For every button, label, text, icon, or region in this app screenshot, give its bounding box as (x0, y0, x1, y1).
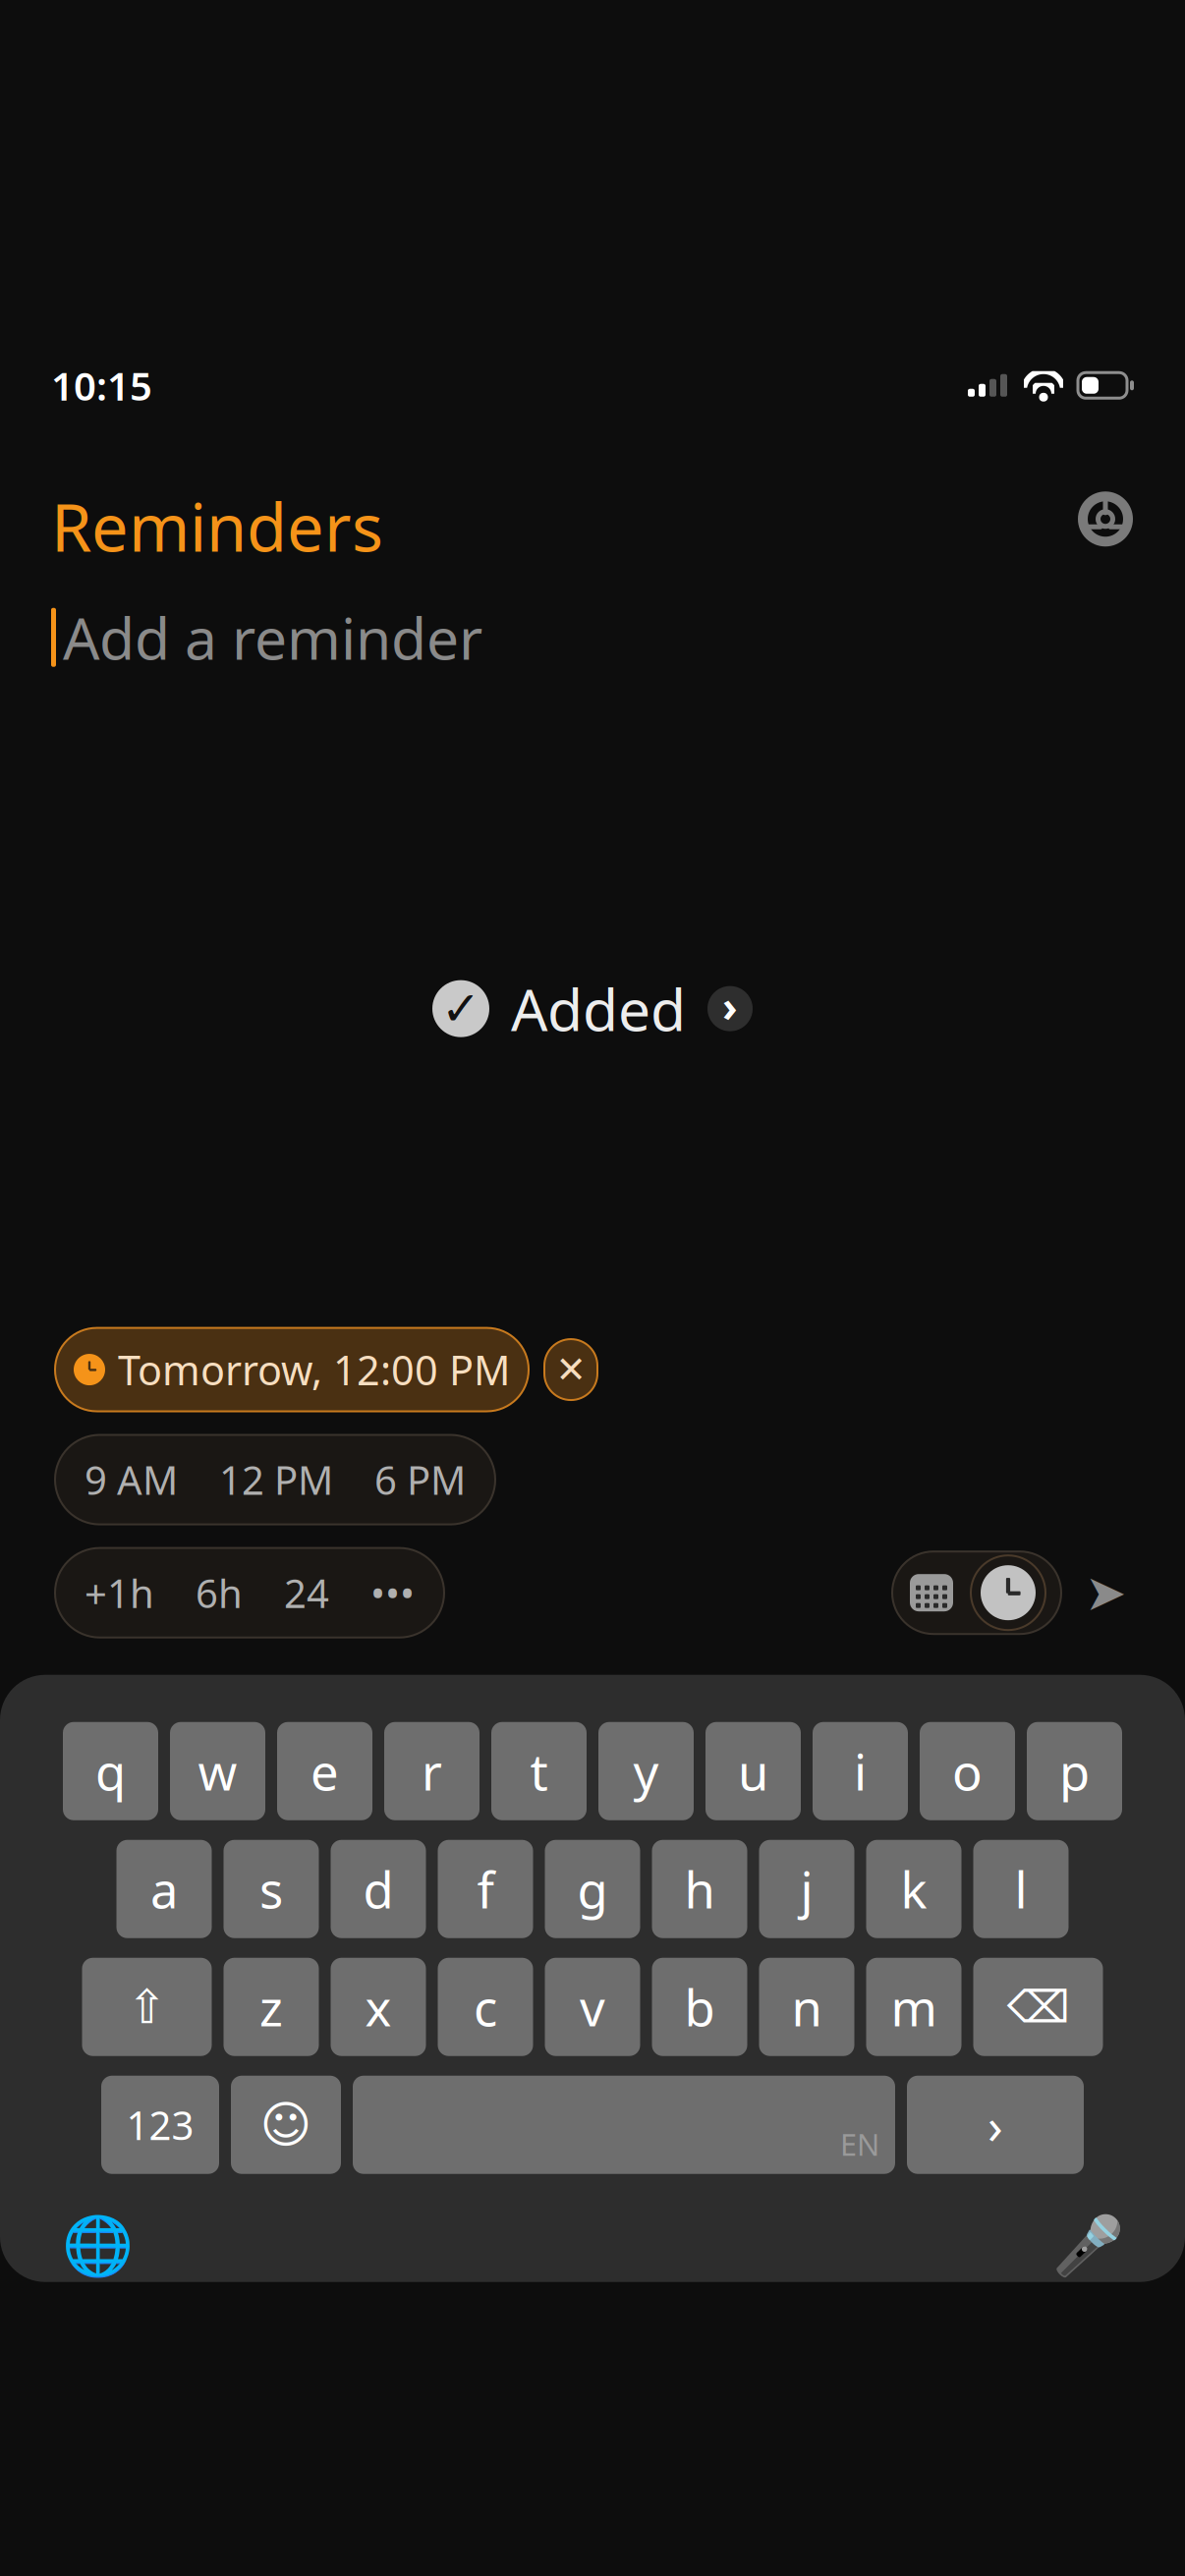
button[interactable]: t (491, 1722, 587, 1820)
button[interactable]: Remove date (544, 1339, 597, 1400)
staticText: d (363, 1856, 394, 1922)
staticText: l (1015, 1856, 1027, 1922)
staticText: z (259, 1974, 283, 2040)
staticText: ☺ (260, 2097, 312, 2153)
staticText: g (577, 1856, 608, 1922)
button[interactable]: k (866, 1840, 961, 1938)
staticText: Reminders (51, 483, 383, 570)
button[interactable]: Pick time (971, 1555, 1045, 1630)
staticText: y (633, 1738, 659, 1804)
staticText: f (477, 1856, 494, 1922)
button[interactable]: 6h (175, 1548, 263, 1637)
button[interactable]: q (63, 1722, 158, 1820)
button[interactable]: n (759, 1958, 854, 2056)
button[interactable]: l (973, 1840, 1069, 1938)
button[interactable]: 123 (101, 2076, 219, 2174)
staticText: ••• (370, 1567, 415, 1619)
staticText: s (259, 1856, 283, 1922)
button[interactable]: Dictate (1051, 2209, 1124, 2282)
staticText: x (365, 1974, 392, 2040)
button[interactable]: 24 (263, 1548, 350, 1637)
staticText: p (1059, 1738, 1090, 1804)
staticText: e (310, 1738, 339, 1804)
staticText: 9 AM (85, 1454, 178, 1506)
button[interactable]: ⇧ (82, 1958, 212, 2056)
button[interactable]: +1h (64, 1548, 175, 1637)
staticText: 6 PM (374, 1454, 466, 1506)
button[interactable]: j (759, 1840, 854, 1938)
staticText: h (684, 1856, 715, 1922)
button[interactable]: Send (1081, 1568, 1130, 1617)
staticText: k (901, 1856, 927, 1922)
button[interactable]: 12 PM (198, 1435, 354, 1524)
button[interactable]: ••• (350, 1548, 435, 1637)
button[interactable]: y (598, 1722, 694, 1820)
button[interactable]: x (331, 1958, 426, 2056)
button[interactable]: Settings (1077, 491, 1134, 548)
staticText: 🌐 (61, 2213, 133, 2279)
button[interactable]: z (224, 1958, 319, 2056)
button[interactable]: w (170, 1722, 265, 1820)
staticText: 12 PM (219, 1454, 333, 1506)
staticText: w (198, 1738, 237, 1804)
staticText: a (150, 1856, 178, 1922)
staticText: ⌫ (1007, 1982, 1070, 2032)
staticText: ⇧ (127, 1980, 167, 2034)
button[interactable]: 6 PM (354, 1435, 486, 1524)
staticText: 6h (196, 1567, 243, 1619)
button[interactable]: p (1027, 1722, 1122, 1820)
staticText: +1h (85, 1567, 154, 1619)
button[interactable]: i (813, 1722, 908, 1820)
staticText: v (580, 1974, 605, 2040)
button[interactable]: s (224, 1840, 319, 1938)
staticText: 🎤 (1052, 2213, 1124, 2279)
staticText: 123 (126, 2099, 194, 2151)
staticText: i (854, 1738, 867, 1804)
staticText: o (952, 1738, 983, 1804)
button[interactable]: m (866, 1958, 961, 2056)
staticText: Added (511, 970, 686, 1047)
button[interactable]: u (705, 1722, 801, 1820)
staticText: m (891, 1974, 937, 2040)
button[interactable]: Tomorrow, 12:00 PM (55, 1328, 529, 1411)
button[interactable]: v (545, 1958, 640, 2056)
staticText: c (474, 1974, 497, 2040)
staticText: b (684, 1974, 715, 2040)
button[interactable]: 9 AM (64, 1435, 198, 1524)
button[interactable]: Switch keyboard language (61, 2209, 134, 2282)
staticText: Add a reminder (63, 599, 482, 676)
staticText: ✓ (441, 982, 480, 1035)
staticText: ✕ (556, 1349, 586, 1390)
staticText: t (530, 1738, 548, 1804)
button[interactable]: a (116, 1840, 212, 1938)
staticText: 24 (284, 1567, 329, 1619)
staticText: › (987, 2092, 1003, 2158)
staticText: EN (840, 2124, 879, 2164)
button[interactable]: o (920, 1722, 1015, 1820)
button[interactable]: › (907, 2076, 1084, 2174)
button[interactable]: ✓ (432, 970, 753, 1047)
staticText: ➤ (1085, 1564, 1126, 1621)
staticText: u (738, 1738, 768, 1804)
staticText: 10:15 (51, 359, 152, 411)
staticText: Tomorrow, 12:00 PM (118, 1343, 510, 1397)
button[interactable]: Space (353, 2076, 895, 2174)
button[interactable]: h (652, 1840, 747, 1938)
staticText: n (791, 1974, 822, 2040)
button[interactable]: d (331, 1840, 426, 1938)
button[interactable]: ⌫ (973, 1958, 1103, 2056)
staticText: › (722, 978, 738, 1034)
button[interactable]: Pick date (908, 1571, 955, 1614)
button[interactable]: ☺ (231, 2076, 341, 2174)
button[interactable]: e (277, 1722, 372, 1820)
staticText: r (422, 1738, 442, 1804)
button[interactable]: b (652, 1958, 747, 2056)
staticText: q (95, 1738, 126, 1804)
button[interactable]: r (384, 1722, 480, 1820)
button[interactable]: c (438, 1958, 533, 2056)
staticText: j (800, 1856, 813, 1922)
button[interactable]: g (545, 1840, 640, 1938)
button[interactable]: f (438, 1840, 533, 1938)
